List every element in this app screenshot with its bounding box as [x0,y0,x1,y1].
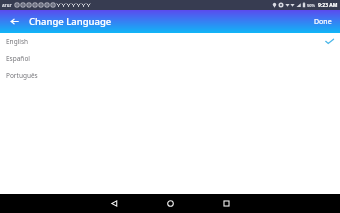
staticText: Español [6,54,30,63]
button[interactable]: Português [0,67,340,84]
staticText: 9:23 AM [318,2,338,9]
staticText: Done [314,17,332,27]
staticText: AT&T [2,3,12,8]
button[interactable]: Back [97,194,131,213]
button[interactable]: Español [0,50,340,67]
staticText: 50% [307,3,316,8]
staticText: Português [6,71,38,80]
button[interactable]: Home [153,194,187,213]
button[interactable]: English [0,33,340,50]
button[interactable]: Done [306,12,340,32]
staticText: Change Language [29,15,112,28]
button[interactable]: Recent apps [209,194,243,213]
button[interactable]: Back [7,14,22,29]
staticText: English [6,37,29,46]
